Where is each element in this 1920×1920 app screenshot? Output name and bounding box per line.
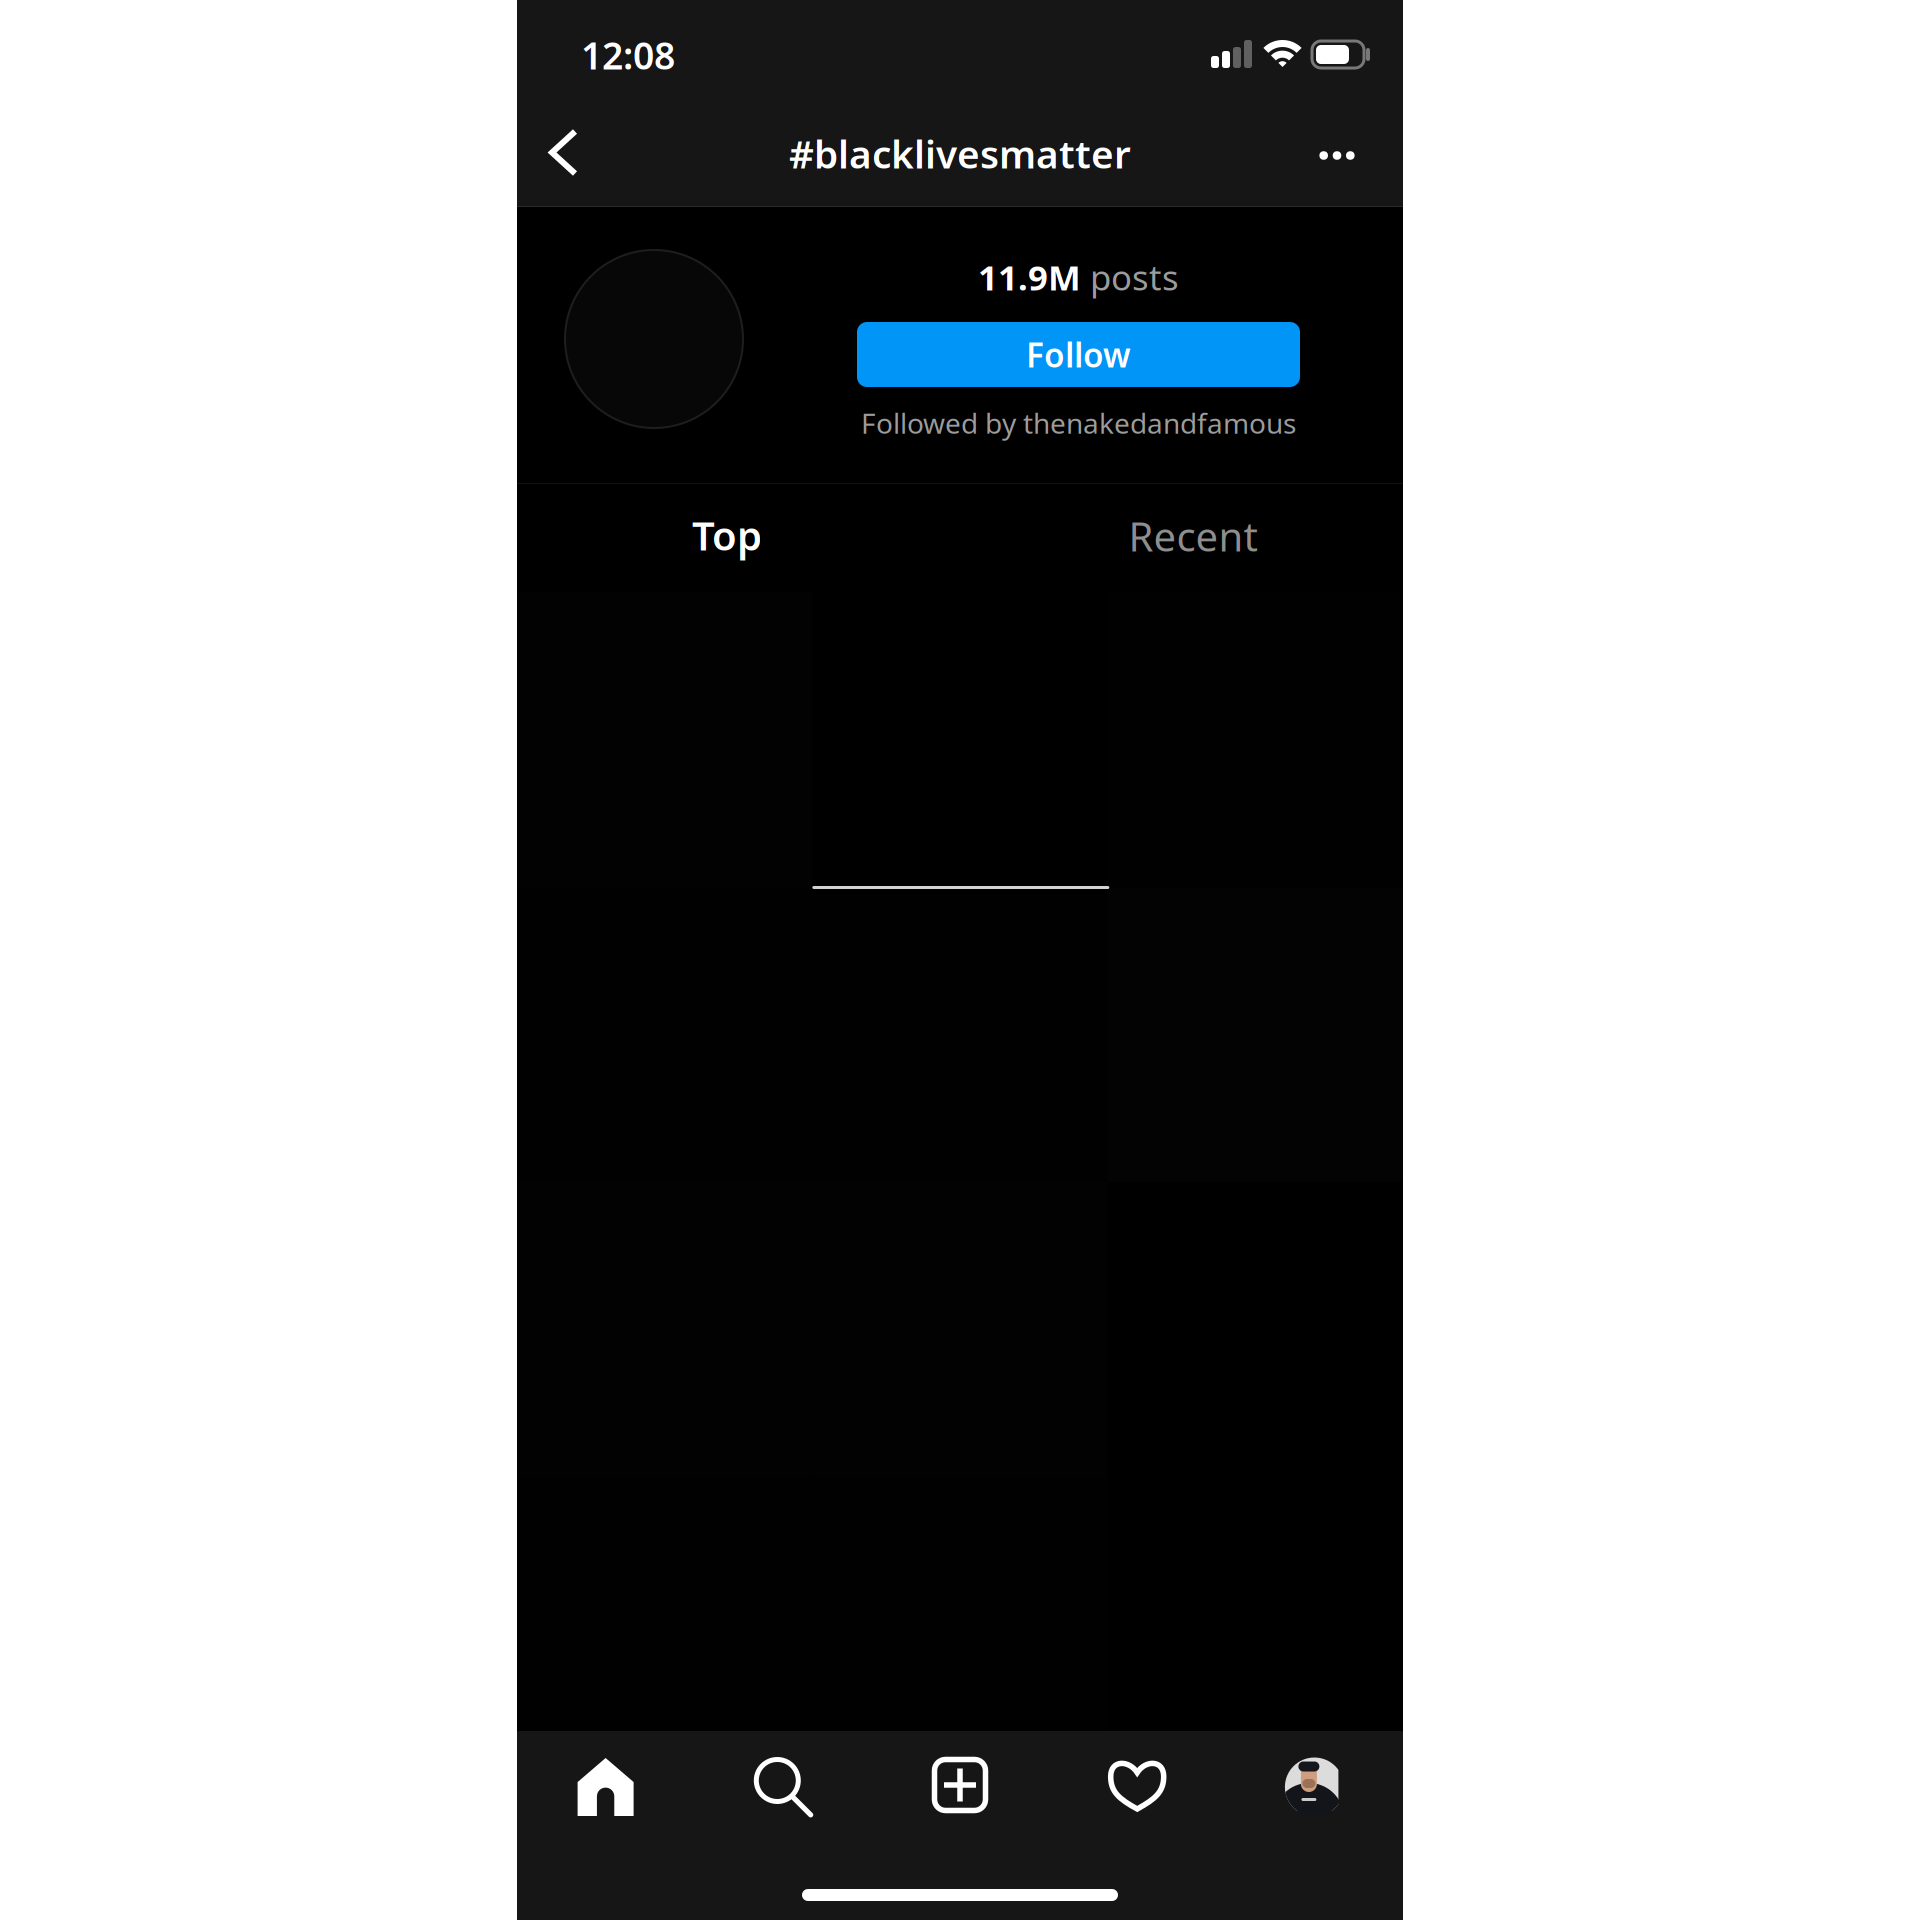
staticText: Recent (1128, 509, 1257, 562)
staticText: Follow (1026, 332, 1131, 377)
button[interactable]: Activity (1049, 1731, 1226, 1843)
staticText: 12:08 (581, 30, 675, 80)
button[interactable]: Post (812, 887, 1108, 1183)
staticText: posts (1081, 254, 1179, 300)
button[interactable]: Post (812, 1478, 1108, 1773)
button[interactable]: Post (1108, 1478, 1403, 1773)
button[interactable]: Post (517, 1478, 812, 1773)
button[interactable]: Top (517, 484, 937, 592)
button[interactable]: Profile (1226, 1731, 1403, 1843)
button[interactable]: Recent (983, 484, 1403, 592)
button[interactable]: Post (812, 592, 1108, 887)
button[interactable]: More options (1271, 95, 1403, 206)
staticText: Followed by thenakedandfamous (861, 404, 1296, 442)
staticText: #blacklivesmatter (789, 128, 1131, 179)
staticText: Top (692, 508, 762, 561)
button[interactable]: Follow (857, 322, 1300, 387)
button[interactable]: Search (694, 1731, 871, 1843)
staticText: 11.9M (978, 254, 1081, 300)
button[interactable]: New post (871, 1731, 1049, 1843)
button[interactable]: Home (517, 1731, 694, 1843)
button[interactable]: Back (517, 95, 610, 206)
